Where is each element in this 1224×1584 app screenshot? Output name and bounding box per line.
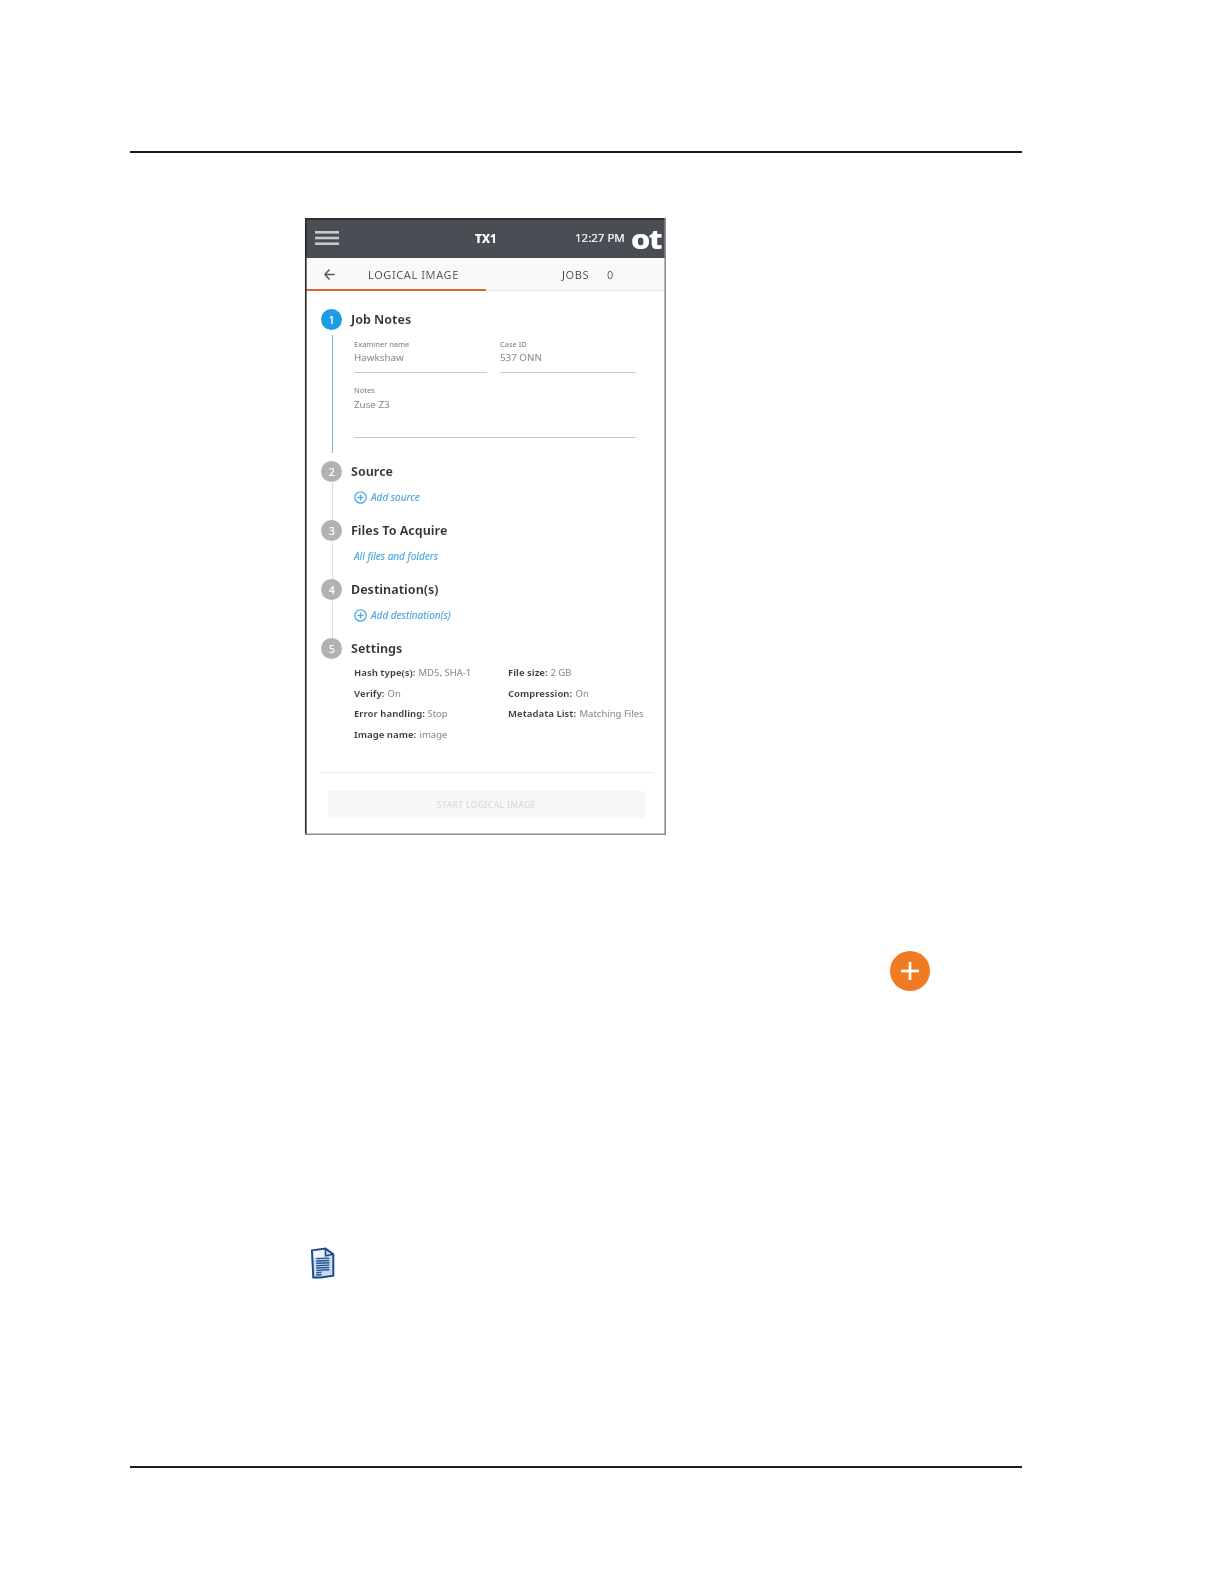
- staticText: image: [417, 728, 448, 741]
- staticText: Image name:: [354, 728, 417, 741]
- staticText: Add destination(s): [371, 608, 451, 622]
- staticText: LOGICAL IMAGE: [368, 267, 459, 282]
- staticText: All files and folders: [354, 549, 438, 563]
- button[interactable]: JOBS: [551, 258, 631, 291]
- button[interactable]: 2: [321, 461, 394, 482]
- button[interactable]: Menu: [313, 229, 341, 247]
- button[interactable]: All files and folders: [354, 549, 438, 563]
- staticText: 5: [329, 642, 335, 656]
- staticText: 1: [329, 313, 335, 327]
- staticText: Add source: [371, 490, 420, 504]
- staticText: 4: [329, 583, 335, 597]
- staticText: Notes: [354, 385, 375, 395]
- staticText: START LOGICAL IMAGE: [437, 799, 536, 810]
- button[interactable]: LOGICAL IMAGE: [351, 258, 475, 291]
- staticText: Files To Acquire: [351, 522, 448, 539]
- button[interactable]: Add: [890, 951, 930, 991]
- staticText: ot: [631, 221, 662, 251]
- staticText: Matching Files: [577, 707, 644, 720]
- button[interactable]: 1: [321, 309, 412, 330]
- staticText: 12:27 PM: [575, 230, 625, 246]
- staticText: Error handling:: [354, 707, 425, 720]
- staticText: Job Notes: [351, 311, 412, 328]
- staticText: Stop: [425, 707, 448, 720]
- staticText: On: [385, 687, 401, 700]
- staticText: Hawkshaw: [354, 351, 404, 364]
- staticText: Settings: [351, 640, 403, 657]
- staticText: Source: [351, 463, 394, 480]
- staticText: Metadata List:: [508, 707, 577, 720]
- staticText: JOBS: [562, 267, 590, 282]
- staticText: 0: [607, 267, 614, 282]
- button[interactable]: 3: [321, 520, 448, 541]
- staticText: 537 ONN: [500, 351, 542, 364]
- staticText: Verify:: [354, 687, 385, 700]
- staticText: Case ID: [500, 339, 527, 349]
- staticText: On: [573, 687, 589, 700]
- staticText: 2 GB: [548, 666, 572, 679]
- staticText: Destination(s): [351, 581, 439, 598]
- staticText: TX1: [475, 230, 497, 246]
- staticText: Hash type(s):: [354, 666, 416, 679]
- staticText: 3: [329, 524, 335, 538]
- button[interactable]: START LOGICAL IMAGE: [328, 791, 645, 818]
- other: Document: [311, 1248, 334, 1278]
- staticText: 2: [329, 465, 335, 479]
- staticText: Zuse Z3: [354, 398, 390, 411]
- staticText: File size:: [508, 666, 548, 679]
- staticText: MD5, SHA-1: [416, 666, 472, 679]
- staticText: Compression:: [508, 687, 573, 700]
- button[interactable]: Add destination(s): [354, 608, 451, 622]
- button[interactable]: 5: [321, 638, 403, 659]
- button[interactable]: Back: [311, 258, 347, 291]
- button[interactable]: Add source: [354, 490, 420, 504]
- other: OpenText logo: [631, 221, 664, 251]
- staticText: Examiner name: [354, 339, 410, 349]
- button[interactable]: 4: [321, 579, 439, 600]
